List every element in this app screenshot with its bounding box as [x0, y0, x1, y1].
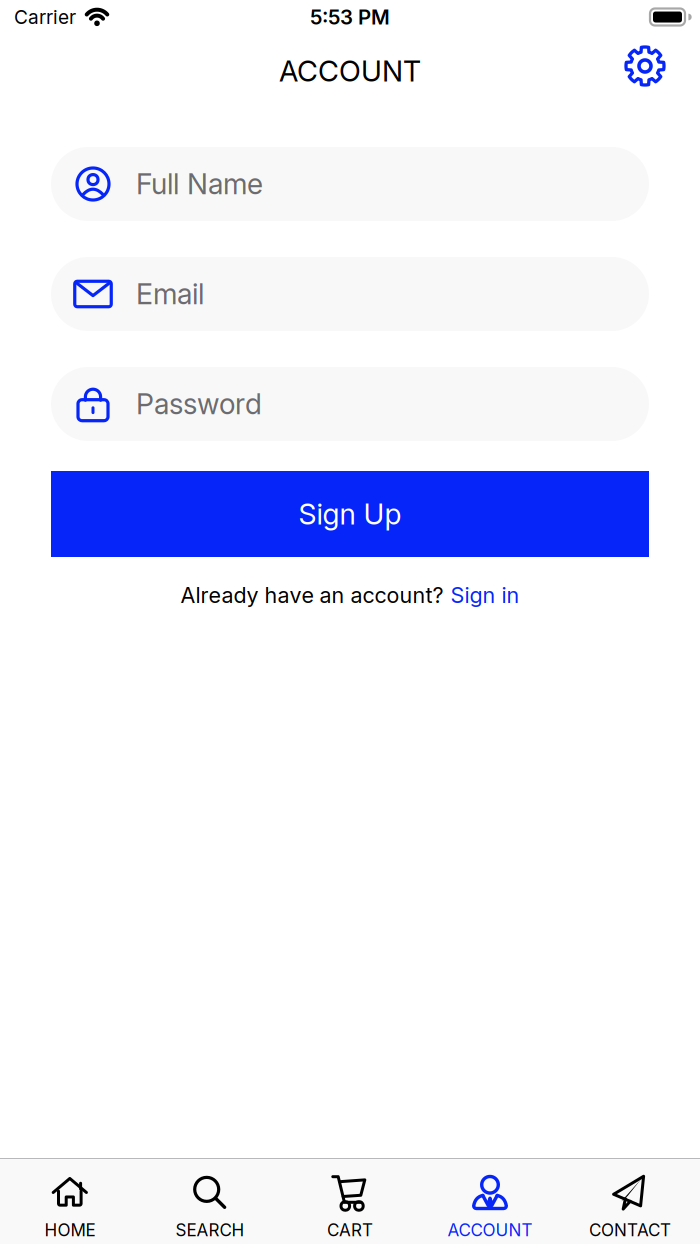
- button[interactable]: ACCOUNT: [420, 1159, 560, 1244]
- staticText: Password: [136, 387, 262, 421]
- button[interactable]: Password: [51, 367, 649, 441]
- staticText: ACCOUNT: [279, 54, 421, 88]
- staticText: CART: [327, 1220, 373, 1240]
- staticText: SEARCH: [175, 1220, 244, 1240]
- button[interactable]: SEARCH: [140, 1159, 280, 1244]
- button[interactable]: CONTACT: [560, 1159, 700, 1244]
- staticText: 5:53 PM: [310, 5, 390, 29]
- staticText: Full Name: [136, 167, 263, 201]
- button[interactable]: HOME: [0, 1159, 140, 1244]
- button[interactable]: Sign Up: [51, 471, 649, 557]
- staticText: CONTACT: [589, 1220, 671, 1240]
- staticText: Email: [136, 277, 204, 311]
- button[interactable]: [624, 45, 666, 87]
- staticText: Carrier: [14, 5, 76, 29]
- button[interactable]: Sign in: [450, 582, 519, 608]
- button[interactable]: CART: [280, 1159, 420, 1244]
- staticText: Sign Up: [298, 497, 401, 531]
- staticText: ACCOUNT: [447, 1220, 532, 1240]
- staticText: HOME: [44, 1220, 95, 1240]
- staticText: Sign in: [450, 582, 519, 608]
- button[interactable]: Full Name: [51, 147, 649, 221]
- staticText: Already have an account?: [180, 582, 443, 608]
- button[interactable]: Email: [51, 257, 649, 331]
